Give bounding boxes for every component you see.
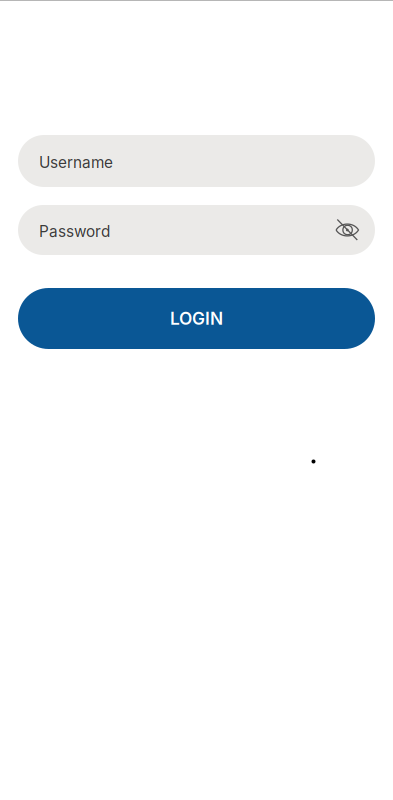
staticText: LOGIN	[170, 308, 223, 329]
staticText: Username	[39, 153, 113, 172]
button[interactable]: LOGIN	[18, 288, 375, 349]
button[interactable]: Username	[18, 135, 375, 187]
button[interactable]: Show password	[334, 217, 360, 243]
staticText: Password	[39, 222, 110, 241]
